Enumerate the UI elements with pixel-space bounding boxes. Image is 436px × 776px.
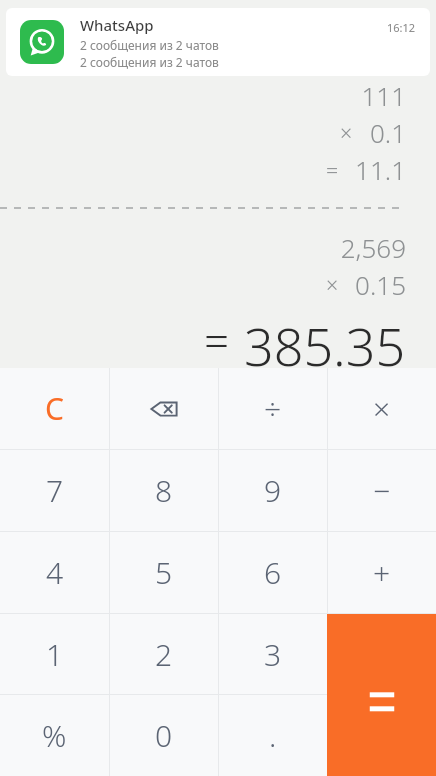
staticText: 11.1 xyxy=(355,152,406,187)
staticText: 6 xyxy=(264,552,282,593)
button[interactable] xyxy=(327,614,436,776)
staticText: 8 xyxy=(155,470,173,511)
button[interactable]: + xyxy=(328,532,436,613)
staticText: 4 xyxy=(46,552,64,593)
button[interactable]: 3 xyxy=(219,614,327,694)
button[interactable]: 0 xyxy=(110,695,218,776)
staticText: 111 xyxy=(361,78,406,113)
staticText: 2,569 xyxy=(340,230,406,265)
staticText: 0.1 xyxy=(369,115,406,150)
staticText: WhatsApp xyxy=(80,15,154,35)
button[interactable]: 2 xyxy=(110,614,218,694)
staticText: 385.35 xyxy=(244,310,406,368)
staticText: 5 xyxy=(155,552,173,593)
button[interactable]: . xyxy=(219,695,327,776)
staticText: + xyxy=(373,552,391,593)
button[interactable]: − xyxy=(328,450,436,531)
staticText: = xyxy=(326,155,339,184)
staticText: C xyxy=(45,388,64,429)
button[interactable]: 1 xyxy=(0,614,109,694)
button[interactable]: 4 xyxy=(0,532,109,613)
button[interactable]: ÷ xyxy=(219,368,327,449)
staticText: 0.15 xyxy=(355,267,406,302)
staticText: = xyxy=(204,310,230,368)
staticText: 16:12 xyxy=(387,20,416,35)
button[interactable]: Backspace xyxy=(110,368,218,449)
staticText: 3 xyxy=(264,634,282,675)
button[interactable]: 5 xyxy=(110,532,218,613)
staticText: 2 сообщения из 2 чатов xyxy=(80,37,219,53)
staticText: 1 xyxy=(46,634,64,675)
staticText: 2 xyxy=(155,634,173,675)
button[interactable]: × xyxy=(328,368,436,449)
staticText: × xyxy=(373,388,391,429)
button[interactable]: 8 xyxy=(110,450,218,531)
staticText: 0 xyxy=(155,715,173,756)
button[interactable]: 9 xyxy=(219,450,327,531)
button[interactable]: 7 xyxy=(0,450,109,531)
button[interactable]: % xyxy=(0,695,109,776)
staticText: 2 сообщения из 2 чатов xyxy=(80,54,219,70)
staticText: − xyxy=(373,470,391,511)
button[interactable]: 6 xyxy=(219,532,327,613)
staticText: % xyxy=(42,715,67,756)
staticText: × xyxy=(340,118,353,147)
staticText: . xyxy=(269,715,277,756)
staticText: ÷ xyxy=(264,388,282,429)
button[interactable]: WhatsApp xyxy=(6,8,430,76)
staticText: 9 xyxy=(264,470,282,511)
staticText: 7 xyxy=(46,470,64,511)
button[interactable]: C xyxy=(0,368,109,449)
staticText: × xyxy=(326,270,339,299)
